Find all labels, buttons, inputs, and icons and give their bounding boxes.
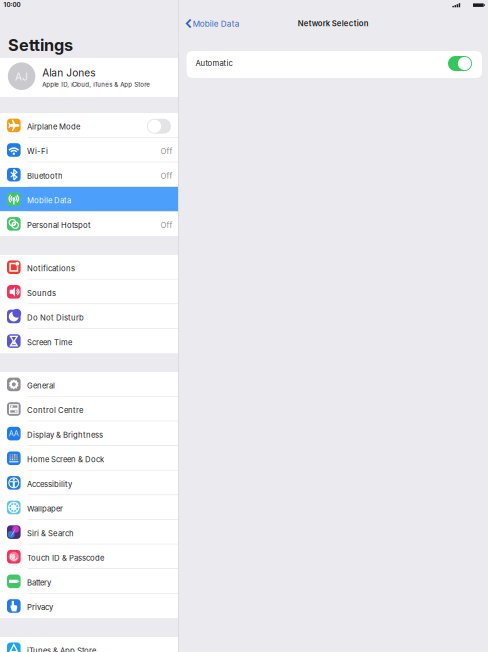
staticText: Battery [27,578,51,587]
staticText: Settings [8,35,73,55]
staticText: Home Screen & Dock [27,455,104,464]
button[interactable]: Wallpaper [0,495,178,520]
staticText: Off [160,221,172,230]
button[interactable]: AA [0,421,178,446]
button[interactable]: AJ [0,58,178,97]
button[interactable]: Screen Time [0,329,178,353]
staticText: Personal Hotspot [27,221,91,230]
staticText: Alan Jones [42,67,95,79]
staticText: Bluetooth [27,171,63,181]
button[interactable]: Home Screen & Dock [0,446,178,470]
staticText: Off [160,147,172,156]
staticText: Do Not Disturb [27,313,84,322]
staticText: Sounds [27,288,56,298]
button[interactable]: iTunes & App Store [0,637,178,652]
staticText: Off [160,171,172,181]
staticText: AJ [15,71,28,83]
button[interactable]: Touch ID & Passcode [0,544,178,569]
button[interactable]: Sounds [0,279,178,304]
button[interactable]: Bluetooth [0,162,178,187]
staticText: 10:00 [3,1,20,8]
button[interactable]: Do Not Disturb [0,304,178,329]
button[interactable]: Privacy [0,594,178,618]
staticText: Wallpaper [27,504,63,513]
staticText: Notifications [27,264,75,273]
staticText: Airplane Mode [27,122,80,131]
staticText: Mobile Data [193,19,240,29]
staticText: Control Centre [27,406,83,415]
staticText: Touch ID & Passcode [27,553,104,563]
button[interactable]: Wi-Fi [0,138,178,162]
button[interactable]: Control Centre [0,397,178,421]
button[interactable]: Accessibility [0,471,178,495]
staticText: Display & Brightness [27,430,103,440]
button[interactable]: Mobile Data [0,187,178,212]
staticText: General [27,381,55,390]
button[interactable]: Personal Hotspot [0,212,178,236]
staticText: AA [9,429,19,438]
button[interactable]: Notifications [0,255,178,279]
staticText: Siri & Search [27,529,74,538]
staticText: iTunes & App Store [27,646,96,652]
staticText: Network Selection [298,19,369,28]
staticText: Wi-Fi [27,147,48,156]
button[interactable]: General [0,372,178,397]
staticText: Accessibility [27,479,72,489]
staticText: Apple ID, iCloud, iTunes & App Store [42,81,150,88]
button[interactable]: Automatic [179,51,488,78]
staticText: Screen Time [27,338,72,347]
staticText: Automatic [196,59,233,68]
button[interactable]: Siri & Search [0,520,178,544]
button[interactable]: Battery [0,569,178,594]
staticText: Mobile Data [27,196,71,205]
button[interactable]: Mobile Data [179,19,240,28]
button[interactable]: Airplane Mode [0,113,178,138]
staticText: Privacy [27,603,53,612]
